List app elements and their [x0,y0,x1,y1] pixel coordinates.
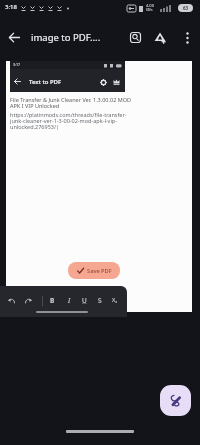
staticText: image to PDF.... [31,31,101,44]
staticText: File Transfer & Junk Cleaner Ver. 1.3.00… [10,96,132,109]
button[interactable] [25,297,32,304]
button[interactable] [4,27,24,47]
button[interactable]: Save PDF [68,262,120,279]
button[interactable]: I [68,296,71,305]
staticText: KB/s [146,8,153,12]
button[interactable] [160,385,191,416]
button[interactable]: X₂ [112,296,118,303]
button[interactable]: B [50,296,55,305]
button[interactable]: S [98,296,102,305]
staticText: 4.00 [146,3,154,8]
button[interactable] [126,28,145,47]
staticText: 3:17 [13,62,20,67]
staticText: https://platinmods.com/threads/file-tran… [10,111,127,130]
staticText: Text to PDF [29,78,62,86]
button[interactable] [178,28,197,47]
button[interactable]: U [82,296,87,305]
staticText: Save PDF [87,267,112,275]
button[interactable] [150,28,169,47]
staticText: 3:18 [5,3,17,11]
button[interactable] [8,297,15,304]
staticText: 63 [183,5,189,11]
